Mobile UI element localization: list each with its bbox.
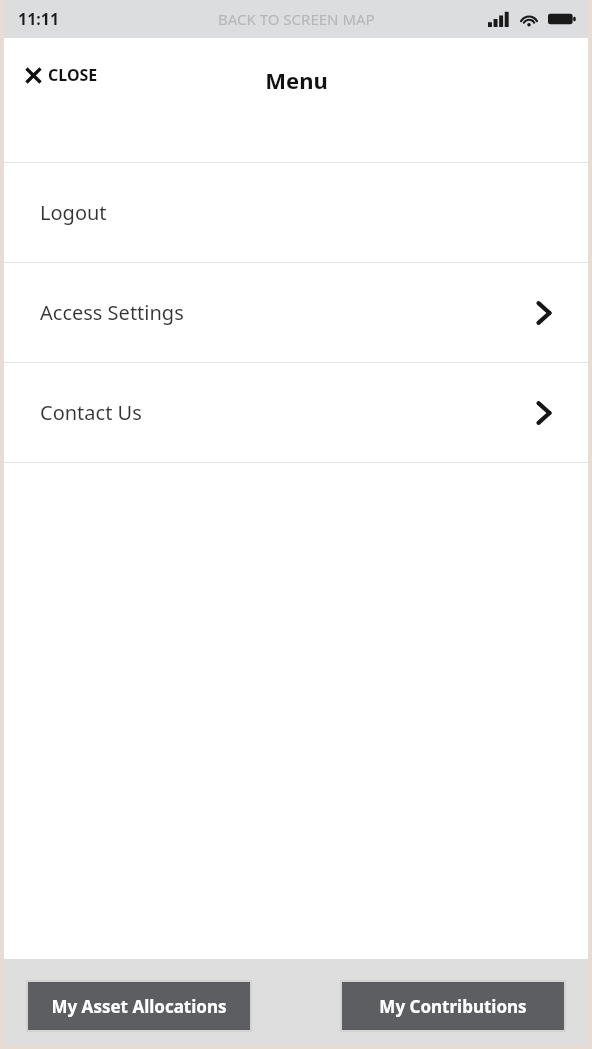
button[interactable]: Logout <box>4 163 588 262</box>
staticText: Contact Us <box>40 399 536 426</box>
button[interactable]: CLOSE <box>4 60 108 90</box>
staticText: Logout <box>40 199 552 226</box>
staticText: My Contributions <box>379 995 527 1018</box>
button[interactable]: My Asset Allocations <box>28 982 250 1030</box>
button[interactable]: BACK TO SCREEN MAP <box>212 7 381 31</box>
other: Contact Us <box>536 400 552 426</box>
staticText: Menu <box>265 65 328 95</box>
staticText: CLOSE <box>48 64 98 86</box>
staticText: BACK TO SCREEN MAP <box>218 9 375 29</box>
staticText: Access Settings <box>40 299 536 326</box>
button[interactable]: My Contributions <box>342 982 564 1030</box>
staticText: 11:11 <box>18 8 60 30</box>
button[interactable]: Access Settings <box>4 263 588 362</box>
staticText: My Asset Allocations <box>51 995 227 1018</box>
other: Access Settings <box>536 300 552 326</box>
button[interactable]: Contact Us <box>4 363 588 462</box>
